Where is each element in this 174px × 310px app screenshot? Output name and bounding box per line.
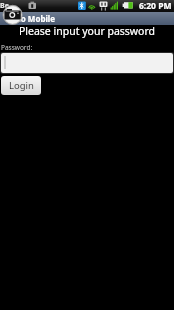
staticText: Go Mobile bbox=[15, 13, 56, 24]
other: Camera bbox=[0, 0, 174, 310]
staticText: Password: bbox=[1, 43, 33, 52]
staticText: Be bbox=[0, 1, 9, 11]
staticText: Login bbox=[9, 79, 34, 92]
staticText: 6:20 PM bbox=[139, 0, 172, 12]
button[interactable] bbox=[1, 53, 173, 73]
button[interactable]: Go Mobile bbox=[0, 12, 174, 25]
button[interactable]: Login bbox=[1, 76, 41, 95]
staticText: Please input your password bbox=[0, 24, 174, 38]
